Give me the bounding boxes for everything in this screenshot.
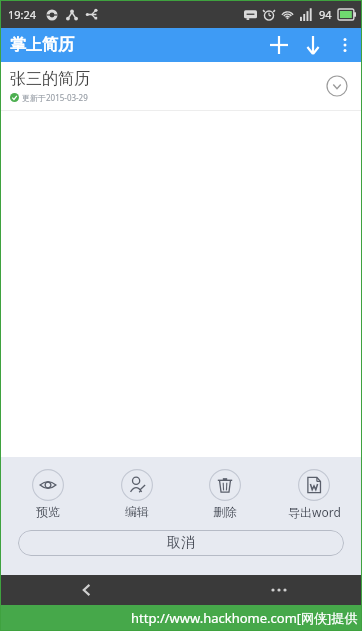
button[interactable]: More options (330, 30, 360, 60)
staticText: 删除 (213, 504, 237, 519)
staticText: 预览 (36, 504, 60, 519)
button[interactable]: 编辑 (97, 467, 177, 521)
button[interactable]: 删除 (185, 467, 265, 521)
button[interactable]: Expand (322, 71, 352, 101)
button[interactable]: 预览 (8, 467, 88, 521)
button[interactable]: 张三的简历 (0, 62, 362, 110)
staticText: 更新于2015-03-29 (22, 92, 88, 103)
button[interactable]: Recent apps (262, 575, 296, 605)
staticText: 导出word (288, 504, 341, 520)
staticText: 94 (319, 7, 332, 22)
button[interactable]: Add (262, 28, 296, 62)
staticText: 张三的简历 (10, 69, 90, 89)
button[interactable]: 导出word (274, 467, 354, 522)
button[interactable]: Back (70, 575, 104, 605)
staticText: 编辑 (125, 504, 149, 519)
staticText: 取消 (167, 534, 195, 552)
staticText: 19:24 (8, 7, 37, 22)
button[interactable]: 取消 (18, 530, 344, 556)
staticText: http://www.hackhome.com[网侠]提供 (131, 609, 358, 627)
staticText: 掌上简历 (10, 35, 74, 55)
button[interactable]: Download (296, 28, 330, 62)
